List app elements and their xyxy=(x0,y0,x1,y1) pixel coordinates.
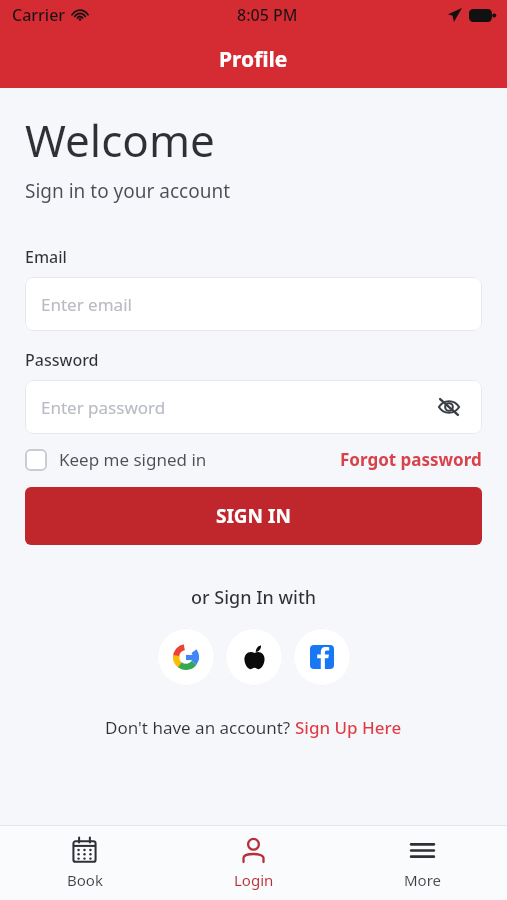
staticText: More xyxy=(404,870,442,890)
staticText: Forgot password xyxy=(340,448,482,471)
staticText: Don't have an account? xyxy=(105,716,295,739)
staticText: Book xyxy=(67,870,103,890)
button[interactable]: Enter email xyxy=(25,277,482,331)
staticText: Password xyxy=(25,349,99,371)
button[interactable]: SIGN IN xyxy=(25,487,482,545)
button[interactable]: Keep me signed in xyxy=(25,448,207,471)
staticText: Sign in to your account xyxy=(25,178,231,204)
staticText: Profile xyxy=(219,45,288,74)
button[interactable]: Login xyxy=(169,826,338,900)
staticText: Welcome xyxy=(25,110,215,170)
button[interactable]: Sign in with Apple xyxy=(225,628,283,686)
staticText: Sign Up Here xyxy=(295,716,402,739)
staticText: Enter email xyxy=(41,293,466,316)
staticText: 8:05 PM xyxy=(237,4,298,26)
staticText: Keep me signed in xyxy=(59,448,207,471)
staticText: Email xyxy=(25,246,67,268)
staticText: Enter password xyxy=(41,396,432,419)
button[interactable]: Book xyxy=(0,826,169,900)
button[interactable]: Sign Up Here xyxy=(295,716,402,739)
staticText: Carrier xyxy=(12,4,66,26)
button[interactable]: Sign in with Google xyxy=(157,628,215,686)
button[interactable]: Forgot password xyxy=(340,448,482,471)
button[interactable]: Enter password xyxy=(25,380,482,434)
button[interactable]: More xyxy=(338,826,507,900)
staticText: or Sign In with xyxy=(191,585,317,610)
button[interactable]: Show password xyxy=(432,390,466,424)
staticText: Login xyxy=(234,870,274,890)
button[interactable]: Sign in with Facebook xyxy=(293,628,351,686)
staticText: SIGN IN xyxy=(216,503,291,529)
